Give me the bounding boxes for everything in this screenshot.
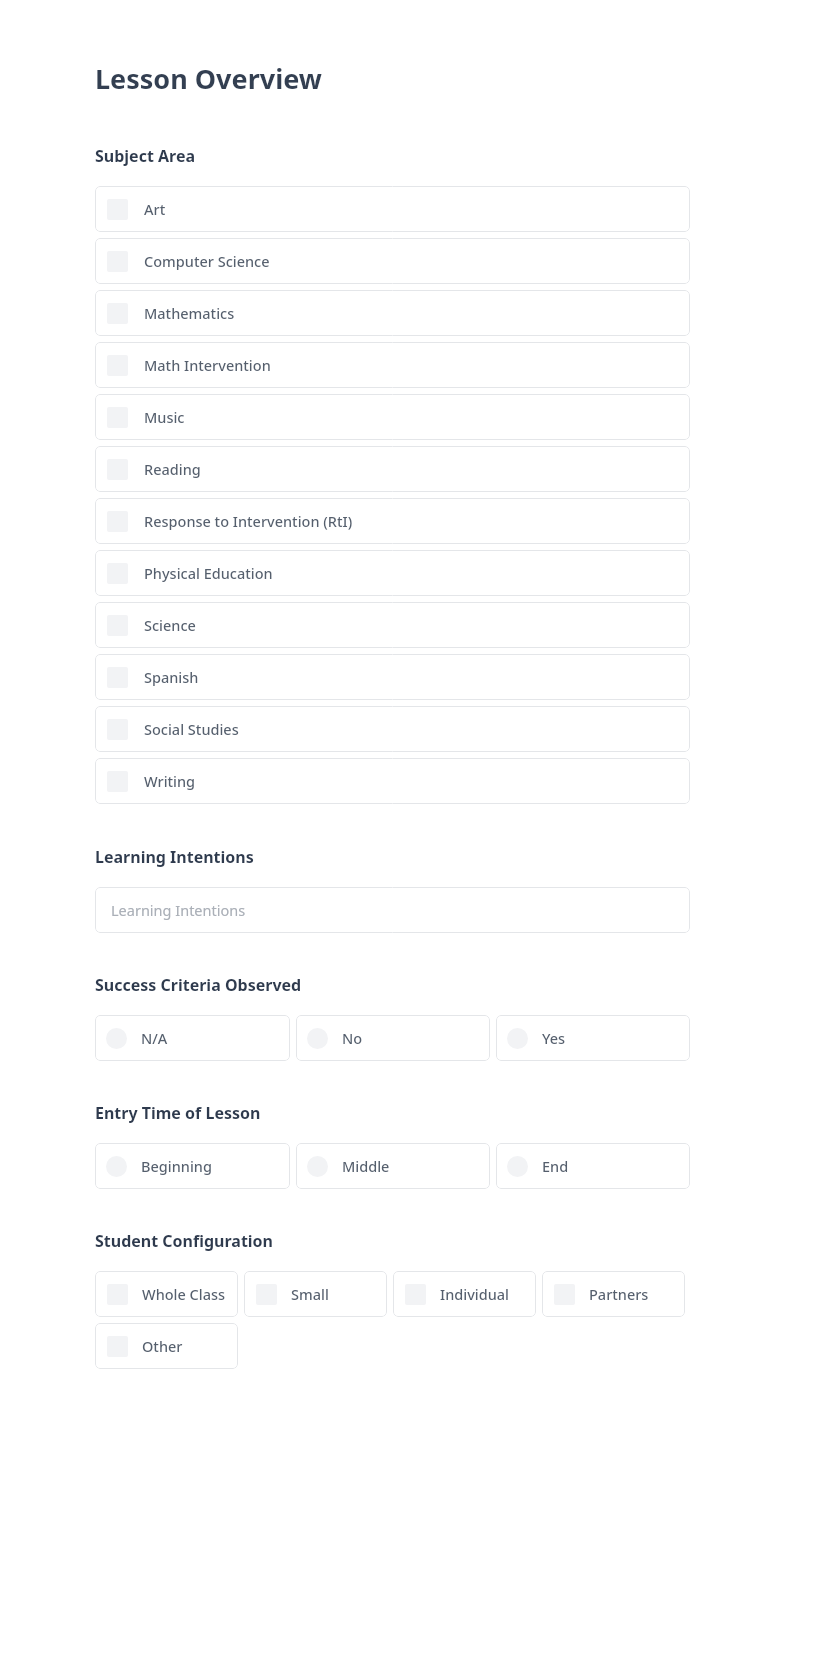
button[interactable]: Music [95, 394, 690, 440]
staticText: Music [144, 407, 185, 427]
staticText: End [542, 1156, 569, 1176]
staticText: Spanish [144, 667, 199, 687]
staticText: Social Studies [144, 719, 239, 739]
button[interactable]: Social Studies [95, 706, 690, 752]
staticText: Response to Intervention (RtI) [144, 511, 353, 531]
button[interactable]: Physical Education [95, 550, 690, 596]
staticText: Learning Intentions [95, 846, 254, 868]
staticText: Success Criteria Observed [95, 974, 302, 996]
button[interactable]: Writing [95, 758, 690, 804]
button[interactable]: N/A [95, 1015, 290, 1061]
staticText: Middle [342, 1156, 390, 1176]
staticText: Entry Time of Lesson [95, 1102, 261, 1124]
staticText: Yes [542, 1028, 566, 1048]
staticText: Subject Area [95, 145, 196, 167]
staticText: Writing [144, 771, 196, 791]
button[interactable]: Math Intervention [95, 342, 690, 388]
button[interactable]: Yes [496, 1015, 690, 1061]
staticText: Math Intervention [144, 355, 271, 375]
button[interactable]: Spanish [95, 654, 690, 700]
button[interactable]: End [496, 1143, 690, 1189]
staticText: Reading [144, 459, 201, 479]
staticText: Physical Education [144, 563, 273, 583]
staticText: Computer Science [144, 251, 270, 271]
button[interactable]: No [296, 1015, 490, 1061]
button[interactable]: Reading [95, 446, 690, 492]
button[interactable]: Small Group [244, 1271, 387, 1317]
staticText: Art [144, 199, 166, 219]
staticText: Partners [589, 1284, 649, 1304]
staticText: Science [144, 615, 196, 635]
button[interactable]: Learning Intentions [95, 887, 690, 933]
staticText: Beginning [141, 1156, 212, 1176]
staticText: Small Group [291, 1284, 375, 1304]
staticText: Lesson Overview [95, 60, 322, 97]
staticText: Other [142, 1336, 183, 1356]
button[interactable]: Response to Intervention (RtI) [95, 498, 690, 544]
staticText: Mathematics [144, 303, 235, 323]
staticText: N/A [141, 1028, 168, 1048]
button[interactable]: Art [95, 186, 690, 232]
staticText: Learning Intentions [111, 900, 246, 920]
button[interactable]: Science [95, 602, 690, 648]
staticText: Student Configuration [95, 1230, 274, 1252]
staticText: Whole Class [142, 1284, 226, 1304]
button[interactable]: Whole Class [95, 1271, 238, 1317]
button[interactable]: Middle [296, 1143, 490, 1189]
staticText: Individual [440, 1284, 509, 1304]
button[interactable]: Individual [393, 1271, 536, 1317]
button[interactable]: Other [95, 1323, 238, 1369]
button[interactable]: Beginning [95, 1143, 290, 1189]
button[interactable]: Computer Science [95, 238, 690, 284]
button[interactable]: Partners [542, 1271, 685, 1317]
button[interactable]: Mathematics [95, 290, 690, 336]
staticText: No [342, 1028, 363, 1048]
